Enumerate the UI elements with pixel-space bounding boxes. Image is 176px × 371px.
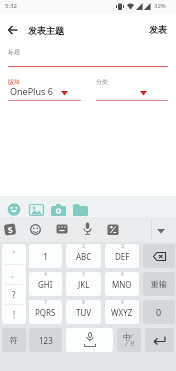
button[interactable]: WXYZ xyxy=(105,300,139,324)
button[interactable] xyxy=(145,328,174,352)
button[interactable]: 发表 xyxy=(143,20,173,38)
staticText: 英 xyxy=(130,340,135,346)
button[interactable]: GHI xyxy=(29,272,62,296)
button[interactable] xyxy=(8,46,168,68)
button[interactable]: MNO xyxy=(105,272,139,296)
staticText: 32% xyxy=(154,2,166,10)
staticText: GHI xyxy=(38,279,53,290)
staticText: 7 xyxy=(44,300,47,306)
staticText: OnePlus 6 xyxy=(10,85,53,97)
staticText: 符 xyxy=(10,335,18,345)
staticText: 9 xyxy=(121,300,124,306)
staticText: 5:32 xyxy=(5,2,17,10)
staticText: 标题 xyxy=(8,48,20,56)
staticText: 1 xyxy=(43,250,49,262)
button[interactable] xyxy=(2,244,26,324)
staticText: WXYZ xyxy=(111,307,133,318)
button[interactable]: JKL xyxy=(66,272,101,296)
staticText: PQRS xyxy=(35,307,56,318)
staticText: 2 xyxy=(82,244,85,250)
button[interactable]: TUV xyxy=(66,300,101,324)
staticText: 版块 xyxy=(8,78,20,86)
staticText: ! xyxy=(13,309,16,320)
staticText: 发表主题 xyxy=(28,25,64,36)
staticText: 重输 xyxy=(151,279,167,289)
button[interactable] xyxy=(29,204,44,216)
staticText: 分类 xyxy=(96,78,108,86)
staticText: 5 xyxy=(82,272,85,278)
staticText: 发表 xyxy=(149,24,167,35)
button[interactable] xyxy=(66,328,113,352)
staticText: JKL xyxy=(78,279,90,290)
button[interactable] xyxy=(156,226,166,235)
button[interactable] xyxy=(83,222,92,236)
staticText: 4 xyxy=(44,272,47,278)
button[interactable]: 符 xyxy=(2,328,26,352)
staticText: 8 xyxy=(82,300,85,306)
button[interactable] xyxy=(73,204,88,216)
staticText: ' xyxy=(13,249,15,260)
button[interactable] xyxy=(143,244,175,268)
button[interactable]: 重输 xyxy=(143,272,175,296)
button[interactable]: 中 xyxy=(117,328,141,352)
staticText: 3 xyxy=(121,244,124,250)
button[interactable]: 1 xyxy=(29,244,62,268)
staticText: ABC xyxy=(76,251,92,262)
staticText: 6 xyxy=(121,272,124,278)
button[interactable] xyxy=(4,22,22,38)
button[interactable] xyxy=(96,76,168,102)
staticText: 0 xyxy=(156,306,162,318)
staticText: MNO xyxy=(112,279,132,290)
button[interactable] xyxy=(107,224,119,236)
button[interactable] xyxy=(7,203,21,216)
button[interactable]: PQRS xyxy=(29,300,62,324)
button[interactable]: ABC xyxy=(66,244,101,268)
staticText: 123 xyxy=(39,335,53,346)
button[interactable]: 0 xyxy=(143,300,175,324)
button[interactable]: 123 xyxy=(29,328,62,352)
button[interactable]: DEF xyxy=(105,244,139,268)
button[interactable] xyxy=(56,224,68,234)
staticText: S xyxy=(7,224,14,235)
button[interactable] xyxy=(30,224,41,235)
button[interactable]: S xyxy=(3,222,17,237)
staticText: ? xyxy=(12,289,16,300)
staticText: 。 xyxy=(11,270,18,279)
button[interactable] xyxy=(8,76,81,102)
staticText: TUV xyxy=(76,307,92,318)
button[interactable] xyxy=(51,204,66,216)
staticText: DEF xyxy=(115,251,130,262)
staticText: 中 xyxy=(123,332,131,342)
